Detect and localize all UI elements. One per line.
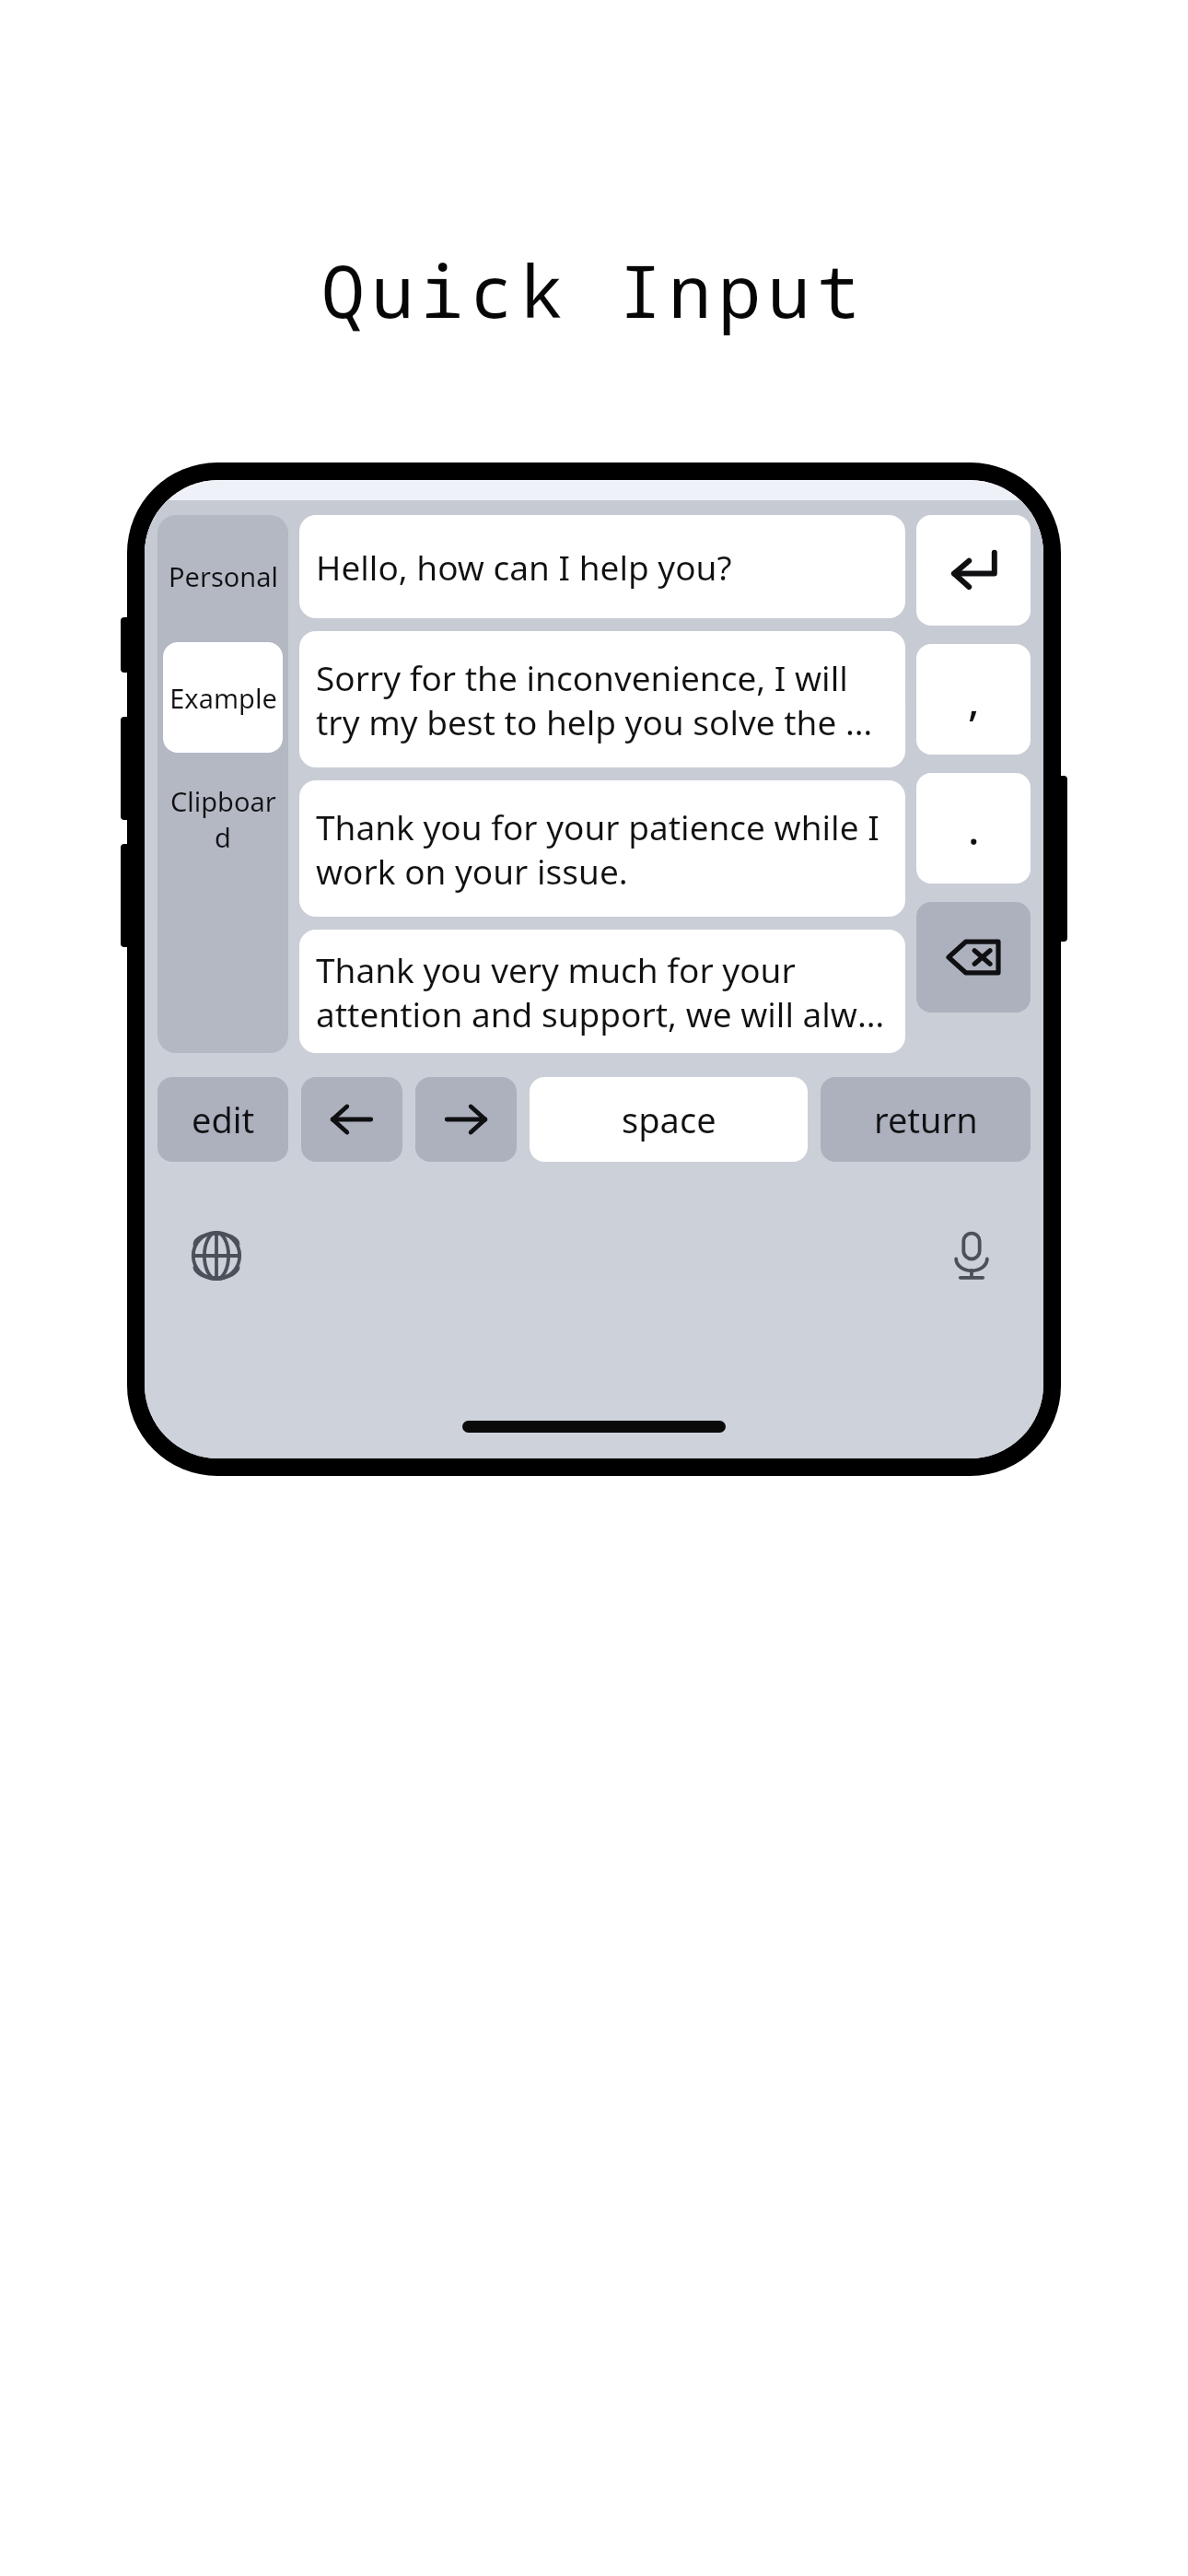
button[interactable]: Move right [415, 1077, 517, 1162]
staticText: Quick Input [321, 241, 867, 339]
button[interactable]: space [530, 1077, 808, 1162]
staticText: Thank you for your patience while I work… [316, 803, 889, 895]
staticText: Thank you very much for your attention a… [316, 946, 889, 1037]
button[interactable]: . [916, 773, 1031, 884]
staticText: return [874, 1095, 978, 1143]
button[interactable]: Sorry for the inconvenience, I will try … [299, 631, 905, 767]
staticText: . [968, 800, 980, 858]
staticText: space [622, 1095, 716, 1143]
button[interactable]: Switch keyboard [169, 1208, 264, 1304]
button[interactable]: return [821, 1077, 1031, 1162]
button[interactable]: edit [157, 1077, 288, 1162]
staticText: edit [192, 1095, 255, 1143]
button[interactable]: Thank you for your patience while I work… [299, 780, 905, 917]
staticText: Clipboard [163, 783, 283, 855]
button[interactable]: Return [916, 515, 1031, 626]
button[interactable]: Dictation [924, 1208, 1019, 1304]
button[interactable]: Move left [301, 1077, 402, 1162]
button[interactable]: Try Phrase Keyboard [165, 1269, 1023, 1383]
button[interactable]: Clipboard [163, 764, 283, 874]
staticText: Example [169, 680, 277, 716]
staticText: Hello, how can I help you? [316, 544, 732, 590]
button[interactable]: Thank you very much for your attention a… [299, 930, 905, 1053]
button[interactable]: Hello, how can I help you? [299, 515, 905, 618]
staticText: , [968, 671, 980, 729]
button[interactable]: Example [163, 642, 283, 753]
button[interactable]: , [916, 644, 1031, 755]
staticText: Sorry for the inconvenience, I will try … [316, 654, 889, 745]
button[interactable]: Personal [163, 521, 283, 631]
button[interactable]: Backspace [916, 902, 1031, 1013]
staticText: 09:41 [200, 519, 299, 571]
staticText: Personal [169, 558, 278, 594]
